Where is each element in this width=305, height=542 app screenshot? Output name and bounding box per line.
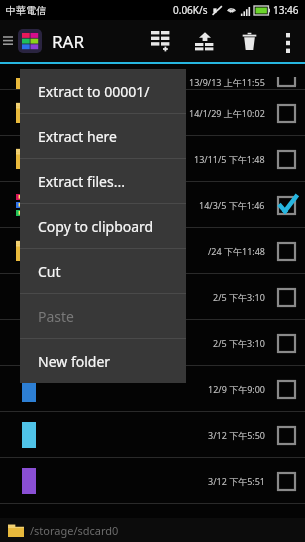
button[interactable]: Select	[273, 192, 299, 218]
button[interactable]: Extract files...	[20, 159, 186, 203]
staticText: 2/5 下午3:10	[213, 337, 265, 349]
button[interactable]: /24 下午11:48	[0, 228, 305, 274]
staticText: Cut	[38, 262, 61, 281]
staticText: 中華電信	[6, 4, 46, 17]
staticText: 4967-8cde-	[52, 334, 121, 352]
button[interactable]: Paste	[20, 294, 186, 338]
button[interactable]: Cut	[20, 249, 186, 293]
staticText: /24 下午11:48	[208, 245, 265, 257]
staticText: Paste	[38, 307, 74, 326]
button[interactable]: 4967-8cde-	[0, 320, 305, 366]
staticText: New folder	[38, 352, 111, 371]
button[interactable]: 00001.rar	[0, 182, 305, 228]
button[interactable]	[18, 29, 42, 53]
button[interactable]: Select	[273, 330, 299, 356]
button[interactable]: Select	[273, 422, 299, 448]
staticText: 3/12 下午5:51	[208, 475, 265, 487]
button[interactable]: Add to archive	[139, 20, 183, 62]
button[interactable]: Copy to clipboard	[20, 204, 186, 248]
staticText: 14/3/5 下午1:46	[199, 199, 265, 211]
button[interactable]: 12/9 下午9:00	[0, 366, 305, 412]
staticText: 2/5 下午3:10	[213, 291, 265, 303]
button[interactable]: Extract to 00001/	[20, 69, 186, 113]
button[interactable]: Extract	[183, 20, 227, 62]
staticText: tencent	[52, 104, 103, 122]
button[interactable]: Select	[273, 376, 299, 402]
button[interactable]: Select	[273, 238, 299, 264]
staticText: bd3-ab3a-	[52, 288, 116, 306]
staticText: 00001.rar	[52, 189, 112, 207]
button[interactable]: New folder	[20, 339, 186, 383]
staticText: 13:46	[273, 3, 299, 17]
staticText: 13/11/5 下午1:48	[194, 153, 265, 165]
staticText: 3/12 下午5:50	[208, 429, 265, 441]
button[interactable]: Delete	[227, 20, 271, 62]
staticText: Extract to 00001/	[38, 82, 150, 101]
button[interactable]: More options	[271, 20, 305, 62]
staticText: 12/9 下午9:00	[208, 383, 265, 395]
staticText: /storage/sdcard0	[30, 523, 119, 538]
button[interactable]: 3/12 下午5:51	[0, 458, 305, 504]
button[interactable]: tmp	[0, 136, 305, 182]
button[interactable]: /storage/sdcard0	[8, 518, 305, 542]
button[interactable]: Select	[273, 468, 299, 494]
button[interactable]: Menu	[0, 20, 16, 62]
staticText: Extract here	[38, 127, 117, 146]
button[interactable]: 3/12 下午5:50	[0, 412, 305, 458]
button[interactable]: Select	[273, 100, 299, 126]
staticText: 13/9/13 上午11:55	[189, 76, 265, 88]
button[interactable]: bd3-ab3a-	[0, 274, 305, 320]
staticText: 0.06K/s	[173, 3, 208, 17]
staticText: RAR	[52, 30, 85, 53]
staticText: Copy to clipboard	[38, 217, 154, 236]
button[interactable]: tencent	[0, 90, 305, 136]
staticText: Extract files...	[38, 172, 125, 191]
button[interactable]: 13/9/13 上午11:55	[0, 64, 305, 90]
button[interactable]: Select	[273, 284, 299, 310]
staticText: tmp	[52, 150, 79, 168]
staticText: 14/1/29 上午10:02	[189, 107, 265, 119]
button[interactable]: Select	[273, 146, 299, 172]
button[interactable]: Extract here	[20, 114, 186, 158]
